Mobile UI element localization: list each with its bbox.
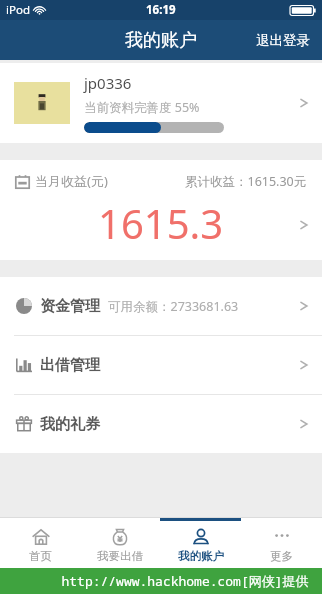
staticText: jp0336 [84, 73, 132, 93]
button[interactable]: jp0336 [0, 63, 322, 143]
staticText: 1615.3 [98, 196, 224, 250]
button[interactable]: 首页 [0, 518, 80, 568]
button[interactable]: 我要出借 [80, 518, 160, 568]
button[interactable]: 当月收益(元) [0, 160, 322, 260]
button[interactable]: 出借管理 [0, 336, 322, 394]
staticText: 资金管理 [40, 297, 100, 316]
staticText: 可用余额：2733681.63 [108, 298, 239, 315]
staticText: 出借管理 [40, 356, 100, 375]
staticText: http://www.hackhome.com[网侠]提供 [61, 572, 309, 590]
staticText: 更多 [270, 549, 293, 563]
staticText: iPod [6, 2, 30, 18]
button[interactable]: 资金管理 [0, 277, 322, 335]
staticText: 首页 [29, 549, 52, 563]
staticText: 退出登录 [256, 32, 310, 49]
staticText: 累计收益：1615.30元 [185, 173, 307, 190]
staticText: 我的账户 [178, 549, 224, 563]
button[interactable]: 我的账户 [160, 518, 241, 568]
button[interactable]: 更多 [241, 518, 322, 568]
button[interactable]: 我的礼券 [0, 395, 322, 453]
button[interactable]: 退出登录 [244, 20, 322, 60]
staticText: 我要出借 [97, 549, 143, 563]
staticText: 16:19 [146, 2, 176, 18]
staticText: 当前资料完善度 55% [84, 99, 200, 116]
staticText: 我的账户 [125, 29, 197, 52]
staticText: 当月收益(元) [35, 172, 108, 190]
staticText: 我的礼券 [40, 415, 100, 434]
